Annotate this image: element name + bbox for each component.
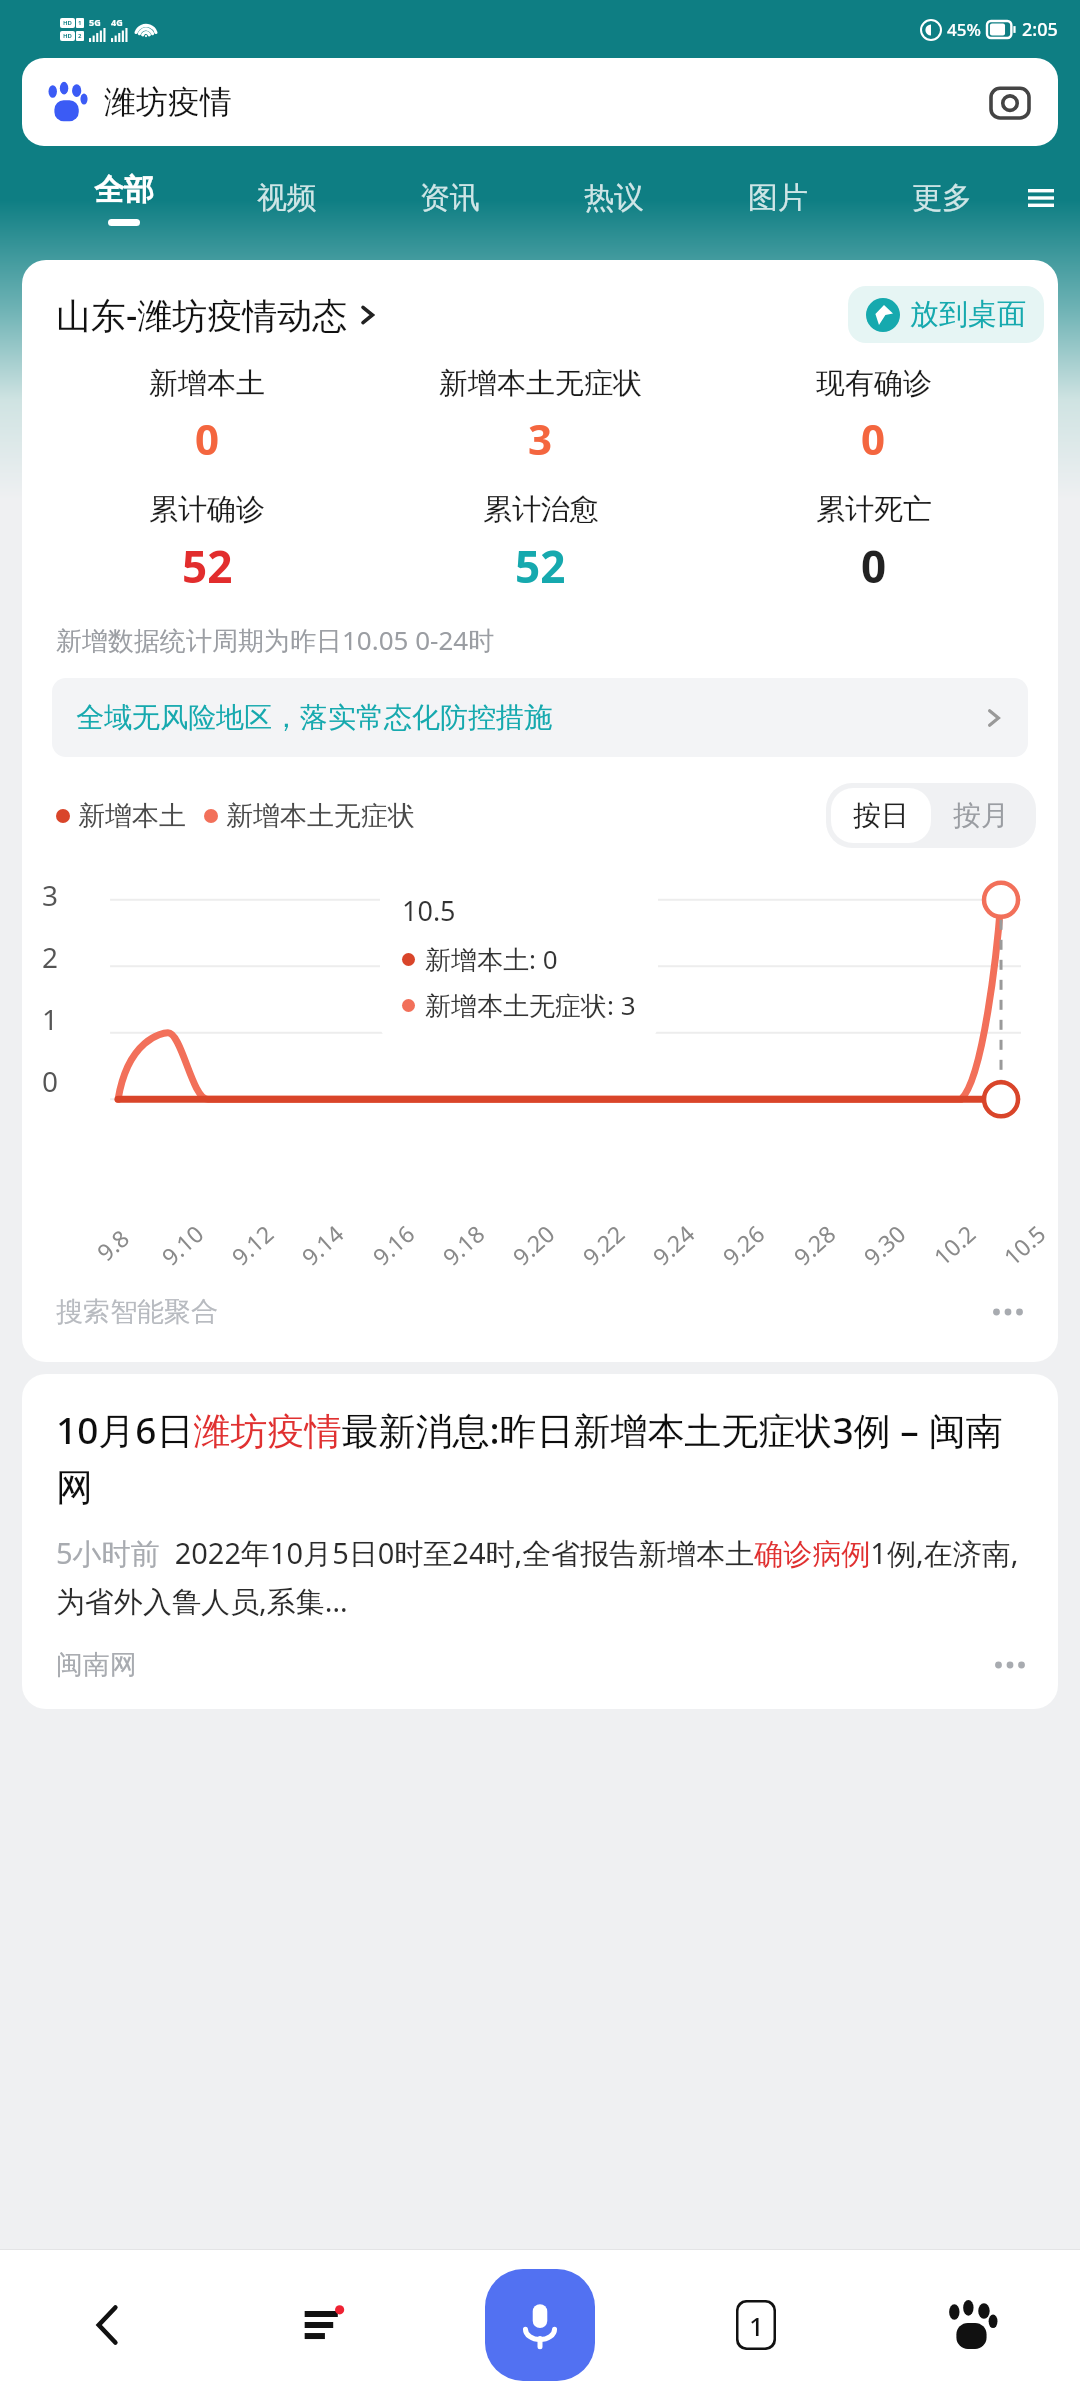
staticText: 5G	[89, 16, 101, 28]
staticText: 山东-潍坊疫情动态	[56, 291, 348, 339]
button[interactable]: 全域无风险地区，落实常态化防控措施	[52, 678, 1028, 757]
staticText: 2:05	[1022, 17, 1058, 42]
staticText: 新增本土	[149, 365, 265, 402]
staticText: 更多	[912, 179, 972, 217]
staticText: 热议	[584, 179, 644, 217]
staticText: HD	[63, 32, 72, 40]
staticText: 10.5	[402, 892, 456, 929]
staticText: 累计确诊	[149, 491, 265, 528]
button[interactable]: 累计治愈	[374, 491, 707, 596]
button[interactable]: Back	[0, 2250, 216, 2400]
staticText: 4G	[111, 16, 123, 28]
staticText: 9.28	[786, 1218, 841, 1271]
staticText: 5小时前 2022年10月5日0时至24时,全省报告新增本土确诊病例1例,在济南…	[56, 1533, 1030, 1621]
button[interactable]: 图片	[696, 146, 860, 250]
staticText: 2	[78, 32, 82, 40]
button[interactable]: 山东-潍坊疫情动态	[56, 291, 378, 339]
staticText: 10.5	[996, 1218, 1051, 1271]
button[interactable]: More tabs	[1024, 146, 1058, 250]
staticText: 放到桌面	[910, 296, 1026, 333]
button[interactable]: 放到桌面	[848, 286, 1044, 343]
staticText: 累计死亡	[816, 491, 932, 528]
staticText: 潍坊疫情	[104, 82, 232, 122]
staticText: 新增本土无症状	[439, 365, 642, 402]
staticText: 0	[861, 410, 886, 467]
staticText: 0	[195, 410, 220, 467]
staticText: 新增本土无症状	[226, 799, 415, 833]
staticText: 9.14	[294, 1218, 349, 1271]
staticText: 3	[42, 876, 59, 914]
staticText: 2	[42, 938, 59, 976]
button[interactable]: Voice search	[485, 2269, 595, 2381]
staticText: 新增本土	[78, 799, 186, 833]
staticText: 1	[42, 1000, 59, 1038]
button[interactable]: 更多	[860, 146, 1024, 250]
staticText: 10月6日潍坊疫情最新消息:昨日新增本土无症状3例 – 闽南网	[56, 1404, 1030, 1511]
staticText: 0	[42, 1062, 59, 1100]
button[interactable]: 按日	[831, 788, 931, 843]
button[interactable]: 全部	[42, 146, 205, 250]
staticText: 视频	[257, 179, 317, 217]
staticText: 按月	[953, 798, 1009, 833]
button[interactable]: Tabs: 1	[648, 2250, 864, 2400]
staticText: 新增数据统计周期为昨日10.05 0-24时	[56, 622, 495, 658]
button[interactable]: 10月6日潍坊疫情最新消息:昨日新增本土无症状3例 – 闽南网	[22, 1374, 1058, 1709]
staticText: 9.20	[505, 1218, 560, 1271]
button[interactable]: More options	[988, 1292, 1028, 1332]
staticText: 9.10	[154, 1218, 209, 1271]
button[interactable]: 按月	[931, 788, 1031, 843]
button[interactable]: 资讯	[368, 146, 532, 250]
staticText: 1	[78, 19, 82, 27]
button[interactable]: Camera search	[986, 78, 1034, 126]
staticText: 搜索智能聚合	[56, 1295, 218, 1329]
staticText: HD	[63, 19, 72, 27]
staticText: 9.8	[90, 1222, 135, 1267]
button[interactable]: More options	[990, 1645, 1030, 1685]
staticText: 9.16	[365, 1218, 420, 1271]
staticText: 9.22	[575, 1218, 630, 1271]
button[interactable]: Menu	[216, 2250, 432, 2400]
staticText: 按日	[853, 798, 909, 833]
button[interactable]: 视频	[205, 146, 368, 250]
staticText: 1	[749, 2308, 764, 2343]
staticText: 9.30	[856, 1218, 911, 1271]
staticText: 闽南网	[56, 1648, 137, 1682]
staticText: 9.26	[715, 1218, 770, 1271]
staticText: 新增本土: 0	[425, 941, 558, 977]
button[interactable]: 累计确诊	[40, 491, 374, 596]
staticText: 52	[515, 536, 566, 596]
staticText: 3	[528, 410, 553, 467]
staticText: 52	[182, 536, 233, 596]
staticText: 10.2	[926, 1218, 981, 1271]
staticText: 图片	[748, 179, 808, 217]
staticText: 现有确诊	[816, 365, 932, 402]
button[interactable]: 热议	[532, 146, 696, 250]
button[interactable]: 新增本土	[40, 365, 374, 467]
button[interactable]: 新增本土无症状	[374, 365, 707, 467]
staticText: 9.12	[224, 1218, 279, 1271]
staticText: 累计治愈	[483, 491, 599, 528]
staticText: 0	[861, 536, 887, 596]
staticText: 全域无风险地区，落实常态化防控措施	[76, 700, 552, 735]
button[interactable]: 潍坊疫情	[22, 58, 1058, 146]
staticText: 全部	[94, 171, 154, 209]
staticText: 9.24	[645, 1218, 700, 1271]
staticText: 45%	[947, 18, 981, 41]
button[interactable]: Baidu home	[864, 2250, 1080, 2400]
staticText: 资讯	[420, 179, 480, 217]
button[interactable]: 累计死亡	[707, 491, 1040, 596]
button[interactable]: 现有确诊	[707, 365, 1040, 467]
staticText: 9.18	[435, 1218, 490, 1271]
staticText: 新增本土无症状: 3	[425, 987, 636, 1023]
